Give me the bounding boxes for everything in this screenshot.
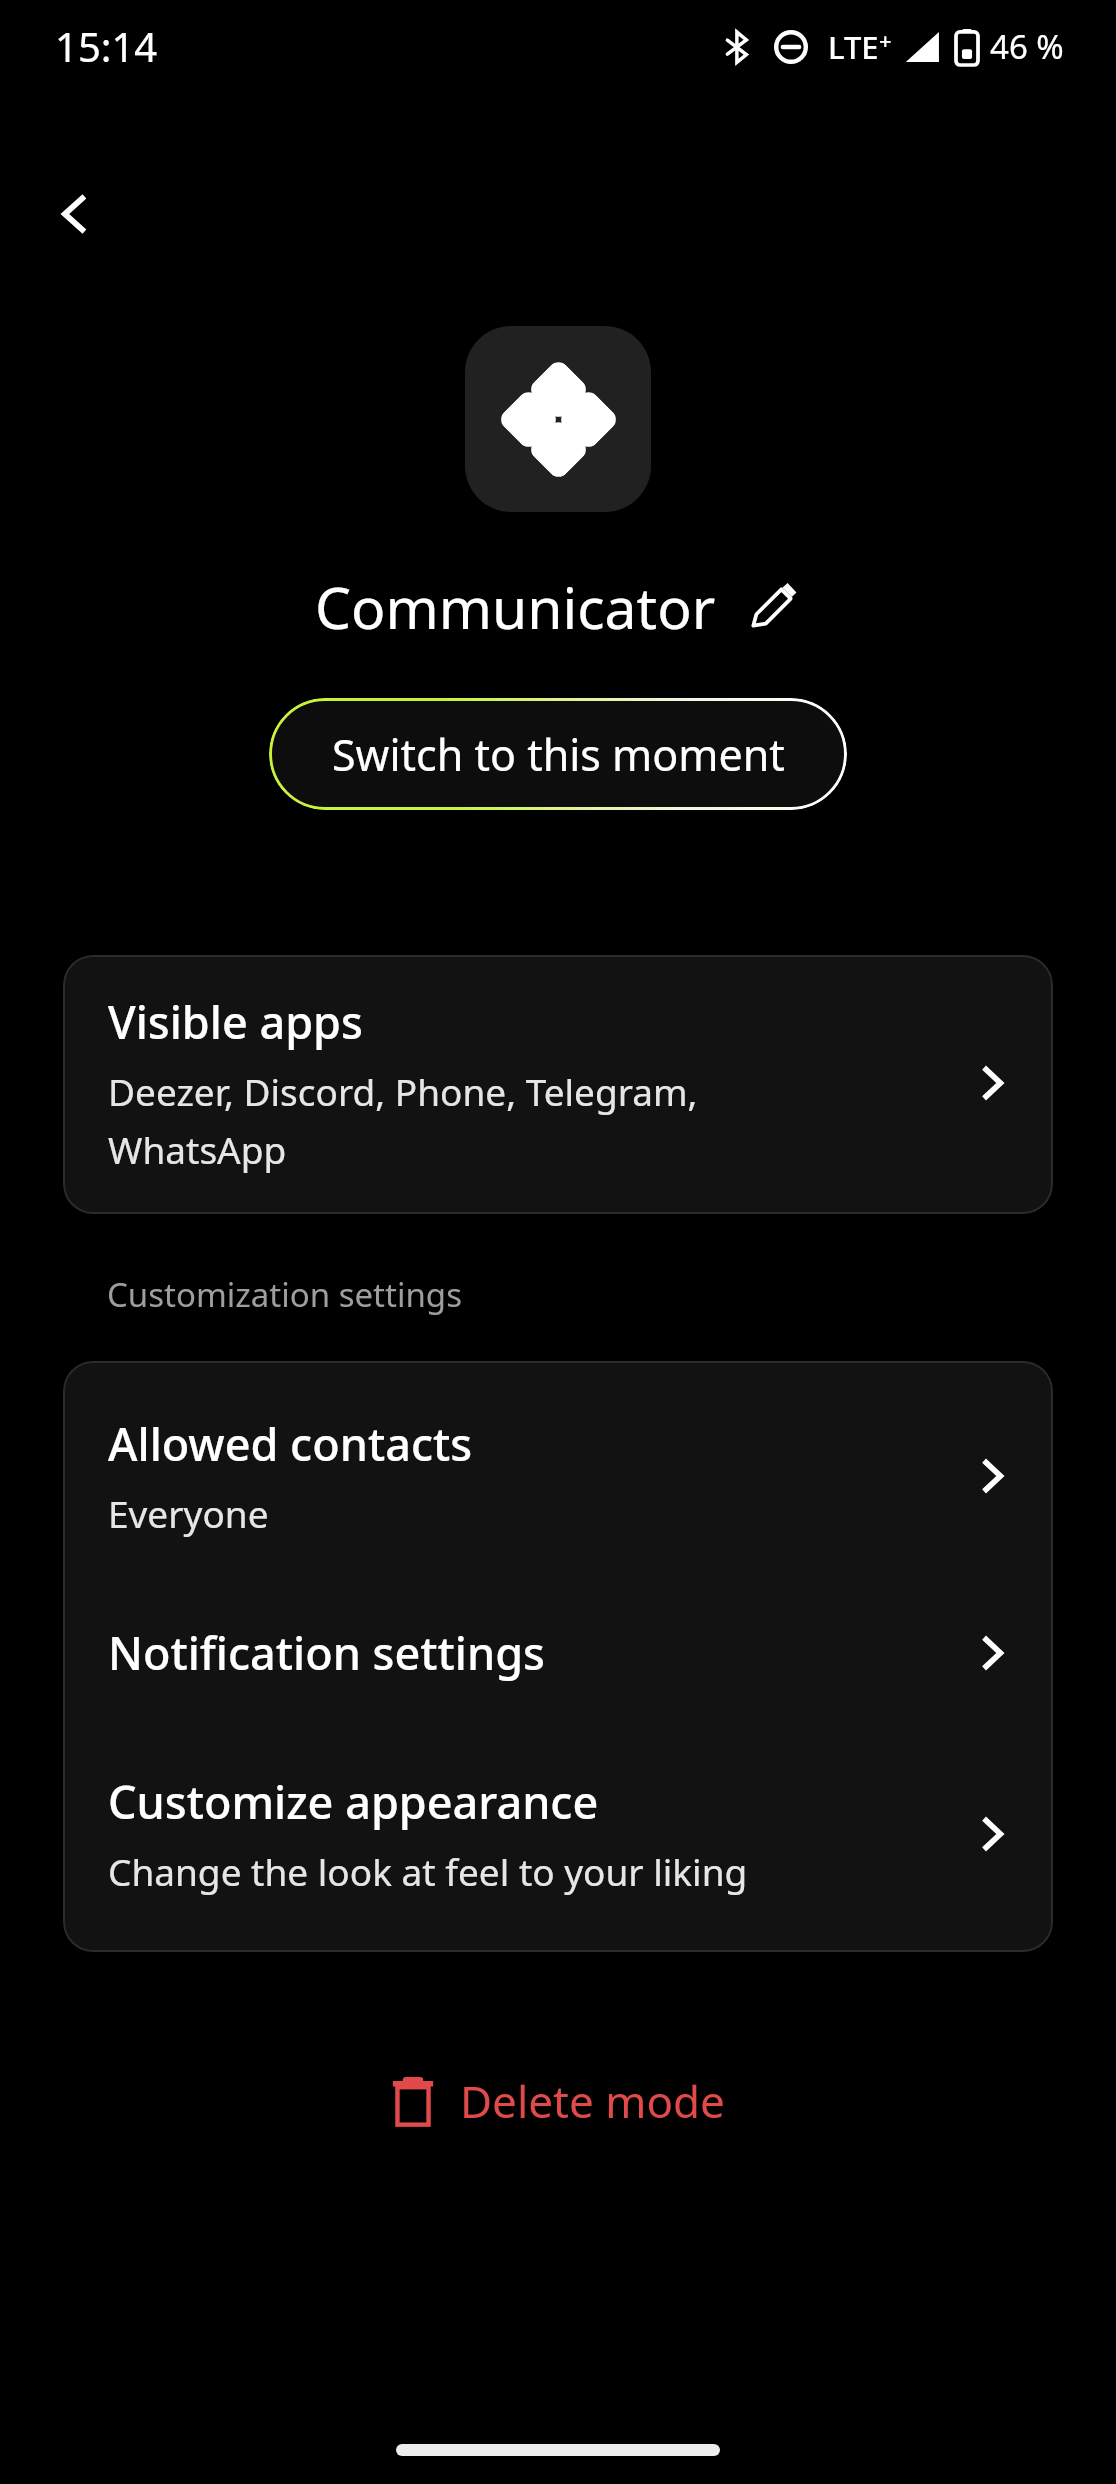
button[interactable]: Moment icon <box>465 326 651 512</box>
staticText: LTE <box>828 26 879 68</box>
staticText: 15:14 <box>55 19 158 73</box>
staticText: Communicator <box>315 568 716 646</box>
staticText: Customization settings <box>107 1272 462 1317</box>
staticText: Notification settings <box>108 1622 545 1683</box>
staticText: Change the look at feel to your liking <box>108 1846 748 1896</box>
button[interactable]: Customize appearance <box>63 1727 1053 1952</box>
staticText: Delete mode <box>460 2071 725 2131</box>
button[interactable]: Back <box>30 170 118 258</box>
staticText: Deezer, Discord, Phone, Telegram, WhatsA… <box>108 1066 698 1174</box>
button[interactable]: Rename <box>742 577 802 637</box>
staticText: Visible apps <box>108 991 363 1052</box>
staticText: Switch to this moment <box>332 725 785 784</box>
staticText: Customize appearance <box>108 1771 599 1832</box>
staticText: 46 % <box>990 24 1064 69</box>
button[interactable]: Visible apps <box>63 955 1053 1214</box>
staticText: Allowed contacts <box>108 1413 473 1474</box>
button[interactable]: Switch to this moment <box>269 698 847 810</box>
staticText: + <box>879 25 892 55</box>
button[interactable]: Allowed contacts <box>63 1361 1053 1578</box>
button[interactable]: Notification settings <box>63 1578 1053 1727</box>
button[interactable]: Delete mode <box>366 2057 751 2145</box>
staticText: Everyone <box>108 1488 269 1538</box>
